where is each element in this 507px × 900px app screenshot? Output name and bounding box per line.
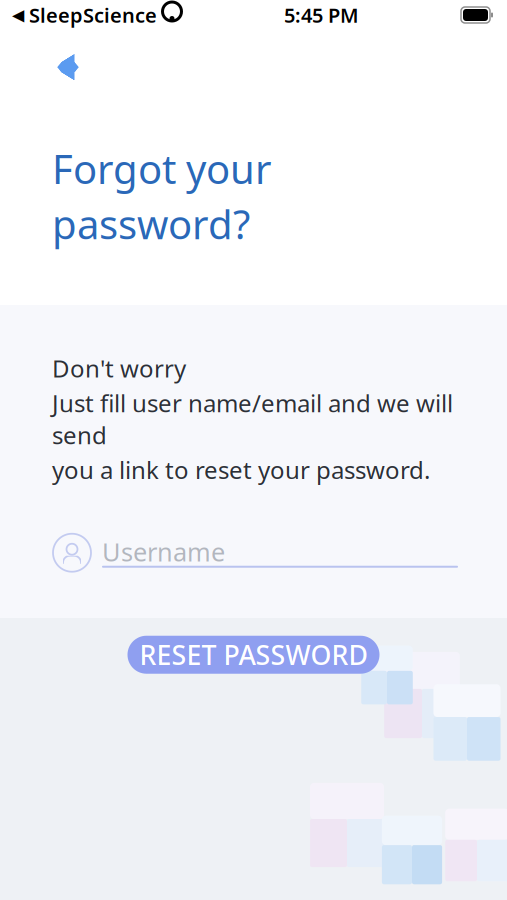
staticText: password? bbox=[52, 197, 250, 250]
staticText: 5:45 PM bbox=[284, 2, 359, 28]
staticText: Username bbox=[102, 535, 225, 568]
button[interactable]: Back bbox=[36, 42, 92, 92]
staticText: RESET PASSWORD bbox=[139, 637, 367, 672]
staticText: you a link to reset your password. bbox=[52, 454, 430, 486]
button[interactable]: RESET PASSWORD bbox=[127, 636, 379, 674]
staticText: ◀ bbox=[12, 6, 24, 24]
staticText: SleepScience bbox=[29, 2, 157, 28]
staticText: Forgot your bbox=[52, 142, 272, 195]
staticText: Just fill user name/email and we will se… bbox=[52, 387, 453, 451]
staticText: Don't worry bbox=[52, 352, 186, 384]
